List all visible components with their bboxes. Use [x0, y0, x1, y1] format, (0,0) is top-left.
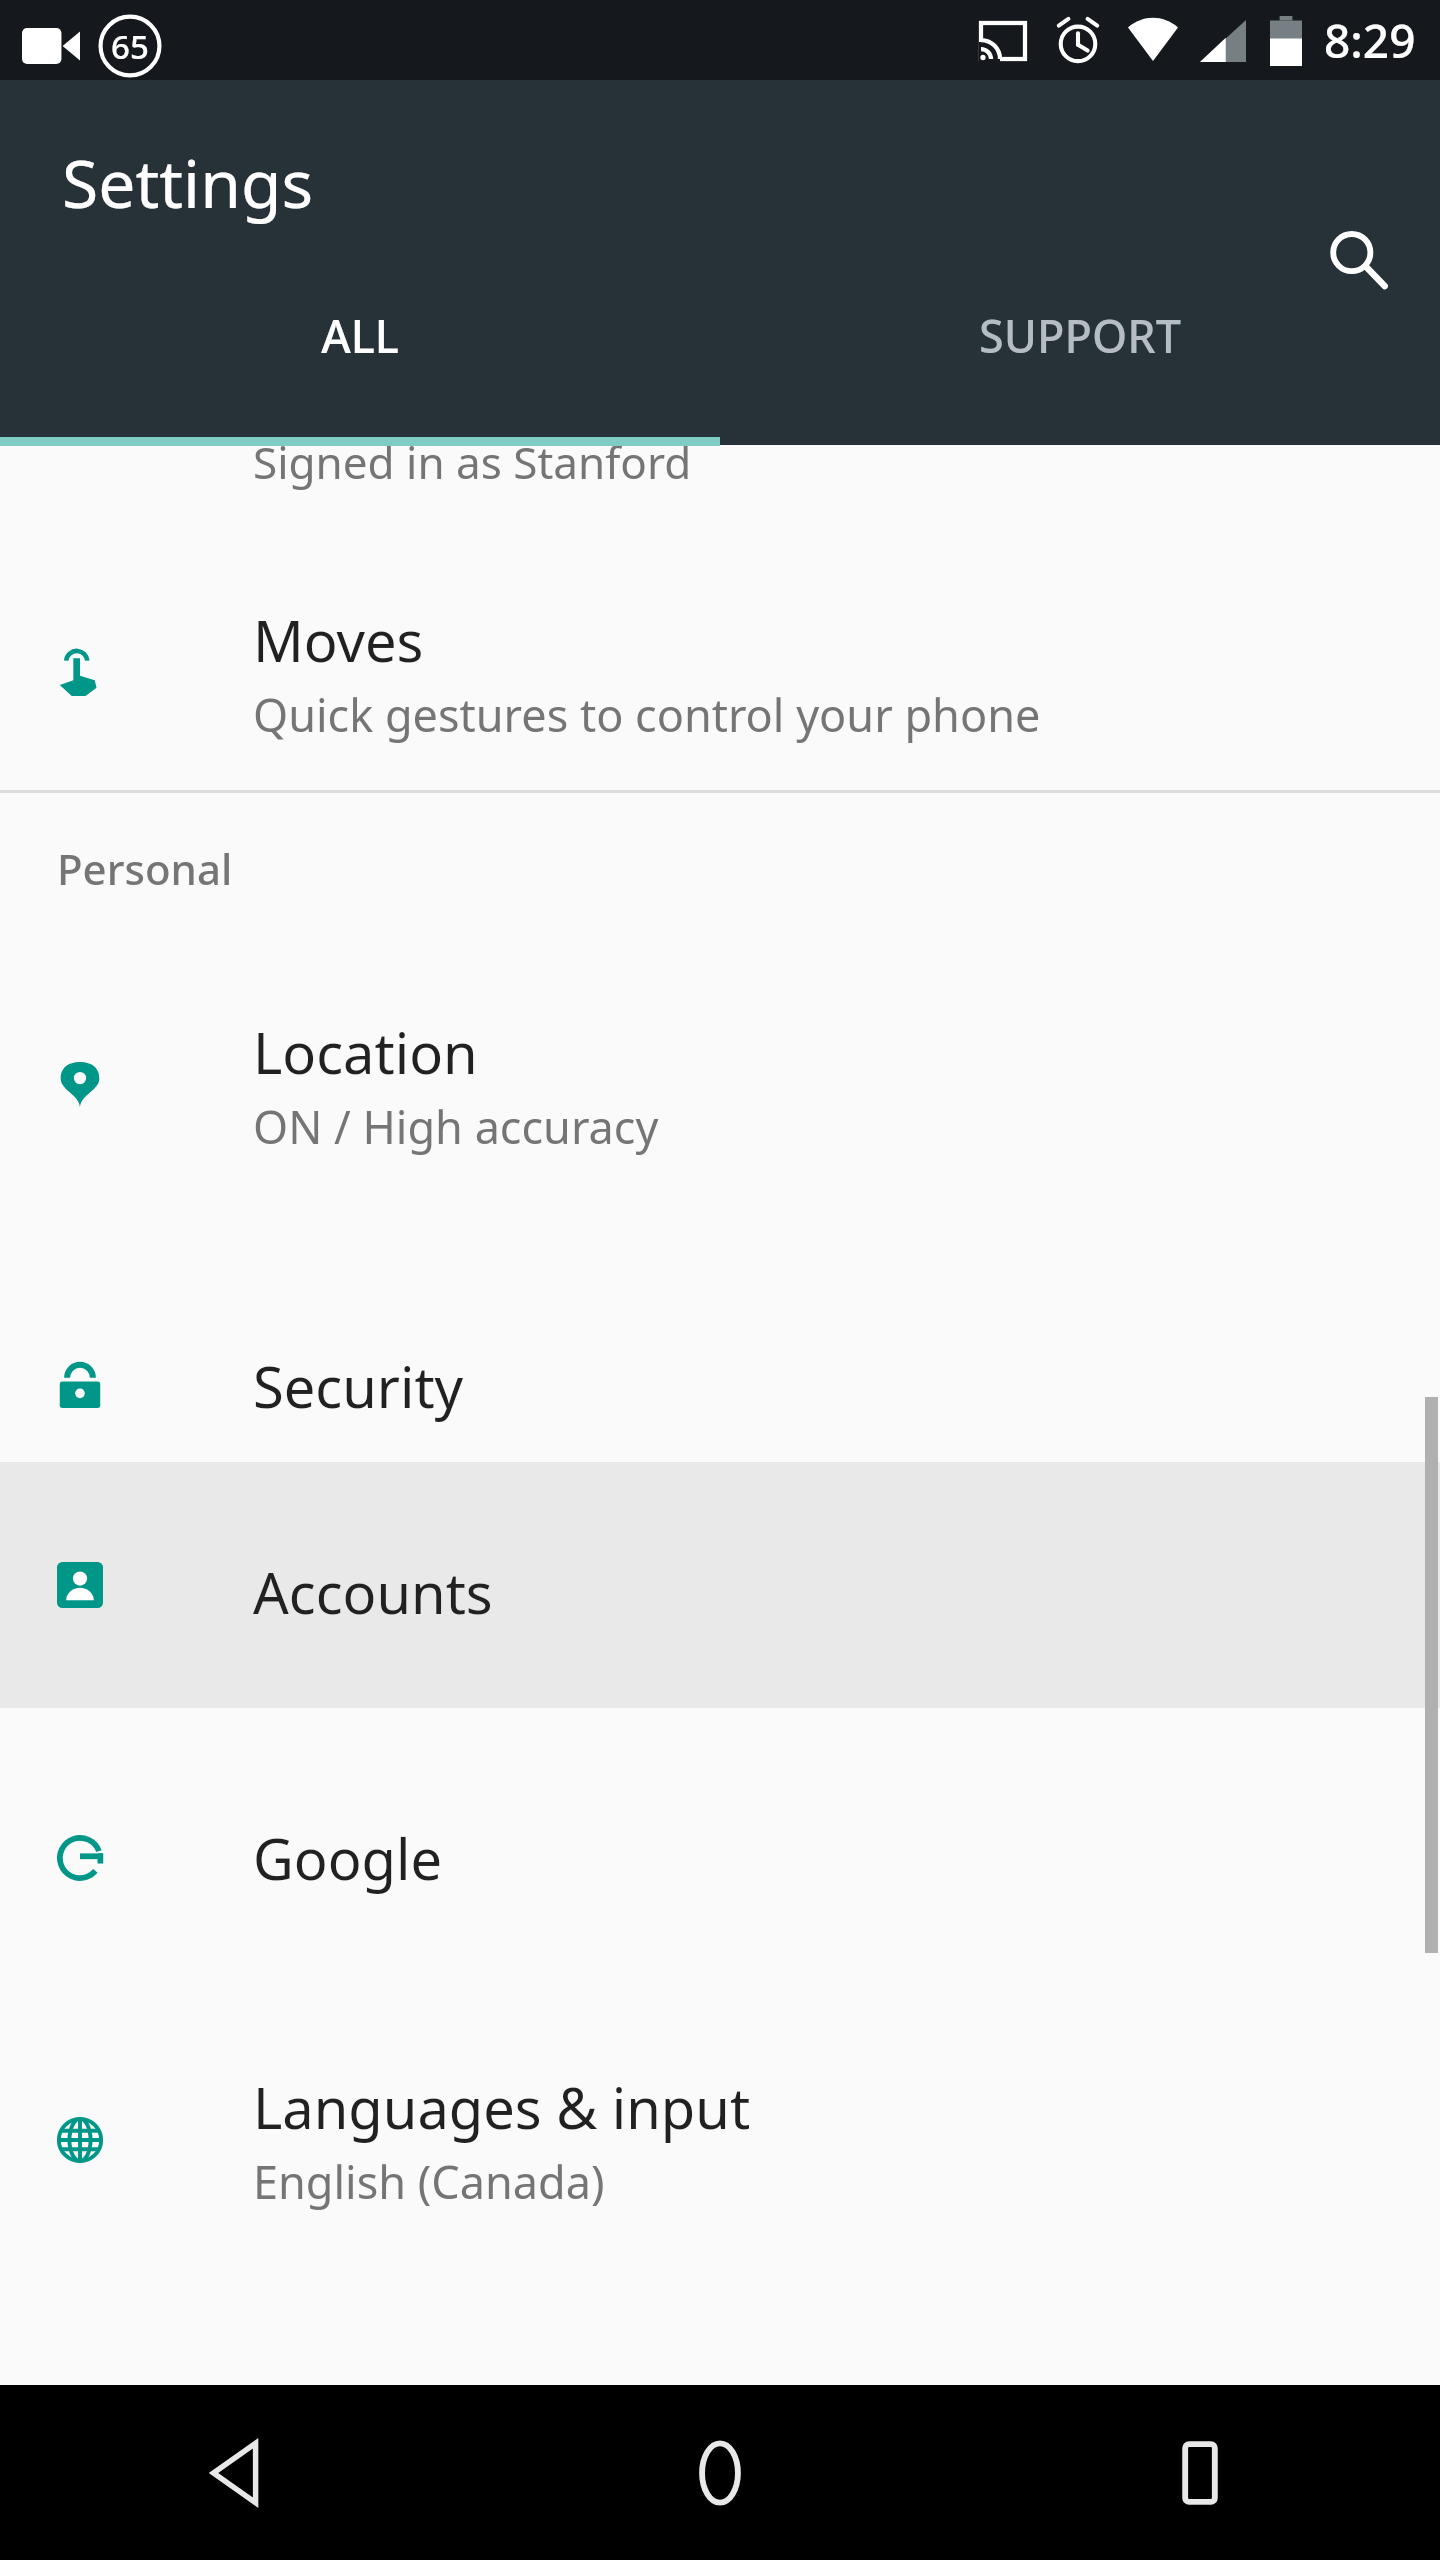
- button[interactable]: Location: [0, 975, 1440, 1195]
- button[interactable]: Languages & input: [0, 2030, 1440, 2250]
- staticText: Quick gestures to control your phone: [253, 684, 1041, 745]
- staticText: Security: [253, 1348, 464, 1424]
- staticText: SUPPORT: [979, 305, 1181, 366]
- staticText: Location: [253, 1014, 478, 1090]
- button[interactable]: Accounts: [0, 1462, 1440, 1708]
- button[interactable]: Moves: [0, 555, 1440, 791]
- staticText: ALL: [321, 305, 399, 366]
- staticText: Signed in as Stanford: [253, 432, 692, 492]
- staticText: 8:29: [1324, 9, 1416, 72]
- button[interactable]: SUPPORT: [720, 270, 1440, 400]
- button[interactable]: Search: [1300, 202, 1416, 318]
- button[interactable]: Back: [0, 2385, 480, 2560]
- staticText: Settings: [62, 137, 314, 227]
- button[interactable]: Home: [480, 2385, 960, 2560]
- staticText: ON / High accuracy: [253, 1096, 659, 1157]
- staticText: Accounts: [253, 1554, 493, 1630]
- button[interactable]: ALL: [0, 270, 720, 400]
- staticText: Languages & input: [253, 2069, 751, 2145]
- staticText: Moves: [253, 602, 424, 678]
- staticText: Backup & reset: [253, 2376, 649, 2452]
- button[interactable]: Security: [0, 1310, 1440, 1462]
- staticText: 65: [111, 24, 149, 69]
- button[interactable]: Google: [0, 1782, 1440, 1934]
- staticText: Personal: [57, 840, 233, 897]
- button[interactable]: Recent apps: [960, 2385, 1440, 2560]
- staticText: Google: [253, 1820, 442, 1896]
- button[interactable]: Backup & reset: [0, 2338, 1440, 2490]
- staticText: English (Canada): [253, 2151, 605, 2212]
